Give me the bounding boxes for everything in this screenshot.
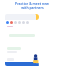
button[interactable] <box>5 14 36 66</box>
staticText: Practice & meet new <box>15 1 49 6</box>
staticText: with partners <box>21 5 44 10</box>
